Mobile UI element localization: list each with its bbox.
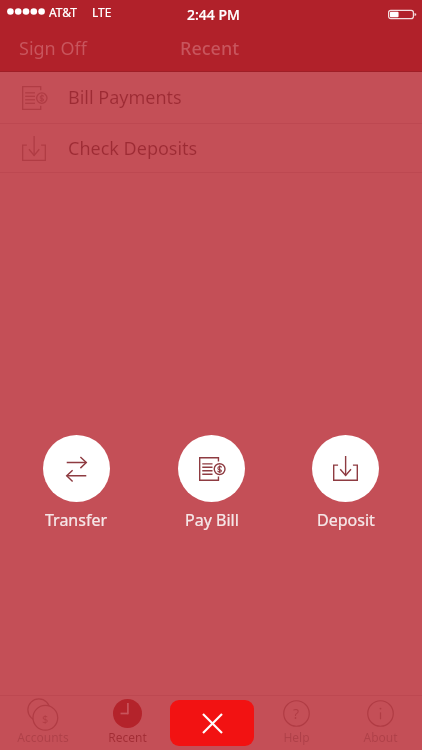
button[interactable]: Close menu xyxy=(170,700,254,746)
staticText: 2:44 PM xyxy=(187,5,240,24)
staticText: $ xyxy=(42,711,49,726)
button[interactable]: Transfer xyxy=(43,435,110,531)
staticText: Deposit xyxy=(317,509,375,531)
staticText: Pay Bill xyxy=(185,509,239,531)
staticText: AT&T xyxy=(49,4,77,20)
staticText: Recent xyxy=(180,36,240,61)
button[interactable]: Deposit xyxy=(312,435,379,531)
button[interactable]: $ xyxy=(0,695,85,750)
button[interactable]: Check Deposits xyxy=(0,124,422,172)
staticText: Bill Payments xyxy=(68,85,182,110)
staticText: Recent xyxy=(108,729,147,745)
button[interactable]: Recent xyxy=(85,695,170,750)
button[interactable]: Bill Payments xyxy=(0,72,422,123)
staticText: Accounts xyxy=(17,729,69,745)
staticText: ? xyxy=(293,704,300,723)
staticText: Sign Off xyxy=(19,36,87,61)
staticText: Transfer xyxy=(45,509,108,531)
button[interactable]: ? xyxy=(254,695,338,750)
staticText: LTE xyxy=(92,4,112,20)
button[interactable]: Sign Off xyxy=(19,36,87,61)
staticText: Check Deposits xyxy=(68,136,198,161)
staticText: Help xyxy=(283,729,310,745)
button[interactable]: Pay Bill xyxy=(178,435,245,531)
button[interactable]: About xyxy=(338,695,422,750)
staticText: About xyxy=(363,729,398,745)
